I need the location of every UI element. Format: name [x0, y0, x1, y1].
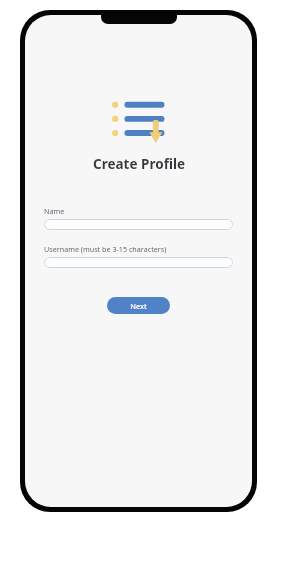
staticText: Name — [44, 206, 65, 216]
button[interactable] — [44, 219, 233, 230]
staticText: Next — [130, 301, 147, 311]
staticText: Username (must be 3-15 characters) — [44, 244, 167, 254]
other: Create profile list icon — [111, 98, 167, 142]
button[interactable] — [44, 257, 233, 268]
staticText: Create Profile — [93, 155, 185, 173]
button[interactable]: Next — [107, 297, 170, 314]
